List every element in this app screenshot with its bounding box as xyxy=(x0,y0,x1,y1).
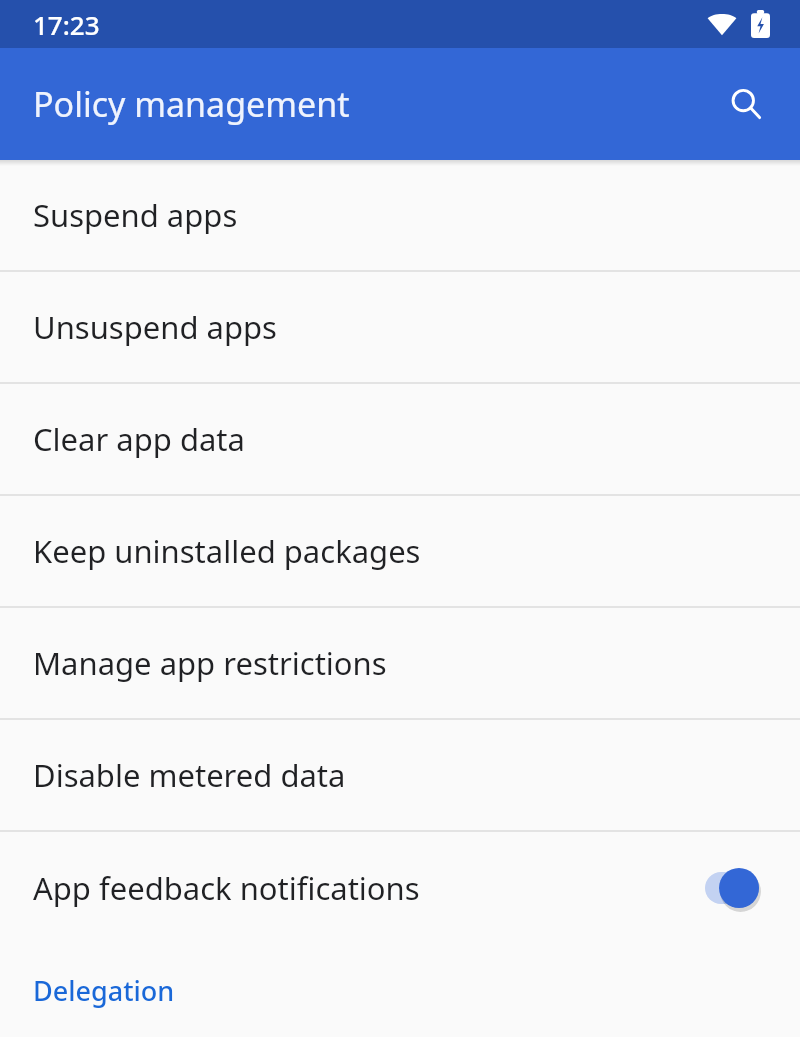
button[interactable]: Unsuspend apps xyxy=(0,272,800,382)
button[interactable]: Search xyxy=(714,72,778,136)
button[interactable]: Delegation xyxy=(0,944,800,1037)
button[interactable]: Keep uninstalled packages xyxy=(0,496,800,606)
button[interactable]: Suspend apps xyxy=(0,160,800,270)
staticText: 17:23 xyxy=(33,7,100,42)
staticText: Clear app data xyxy=(33,418,245,460)
staticText: Suspend apps xyxy=(33,194,238,236)
staticText: Keep uninstalled packages xyxy=(33,530,421,572)
staticText: App feedback notifications xyxy=(33,867,704,909)
staticText: Unsuspend apps xyxy=(33,306,277,348)
button[interactable]: Clear app data xyxy=(0,384,800,494)
button[interactable]: Disable metered data xyxy=(0,720,800,830)
staticText: Manage app restrictions xyxy=(33,642,387,684)
staticText: Delegation xyxy=(33,972,175,1009)
staticText: Policy management xyxy=(33,81,350,127)
staticText: Disable metered data xyxy=(33,754,346,796)
button[interactable]: Manage app restrictions xyxy=(0,608,800,718)
button[interactable]: App feedback notifications xyxy=(0,832,800,944)
